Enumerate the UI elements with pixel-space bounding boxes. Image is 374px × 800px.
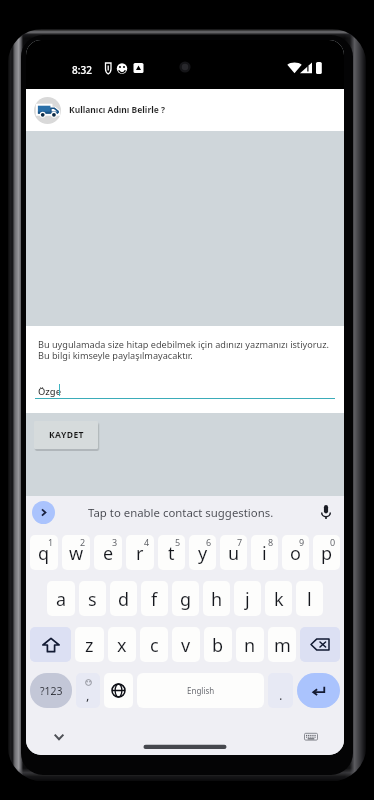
- button[interactable]: r: [126, 535, 154, 570]
- button[interactable]: h: [203, 581, 230, 616]
- staticText: l: [307, 587, 312, 612]
- staticText: p: [321, 541, 333, 566]
- staticText: ?123: [40, 684, 63, 698]
- staticText: y: [198, 541, 208, 566]
- staticText: r: [136, 541, 144, 566]
- button[interactable]: w: [62, 535, 90, 570]
- staticText: c: [150, 633, 159, 658]
- button[interactable]: v: [172, 627, 200, 662]
- staticText: 9: [299, 536, 305, 548]
- staticText: .: [279, 686, 283, 704]
- button[interactable]: a: [47, 581, 75, 616]
- staticText: h: [211, 587, 223, 612]
- staticText: x: [117, 633, 127, 658]
- staticText: i: [262, 541, 267, 566]
- staticText: 1: [48, 536, 54, 548]
- staticText: KAYDET: [49, 429, 84, 441]
- button[interactable]: i: [251, 535, 278, 570]
- staticText: 8:32: [72, 63, 92, 77]
- staticText: 8: [268, 536, 274, 548]
- button[interactable]: Change language: [104, 673, 133, 708]
- button[interactable]: ?123: [30, 673, 72, 708]
- button[interactable]: q: [30, 535, 58, 570]
- staticText: q: [38, 541, 50, 566]
- staticText: s: [88, 587, 97, 612]
- button[interactable]: z: [75, 627, 104, 662]
- staticText: a: [56, 587, 67, 612]
- button[interactable]: o: [282, 535, 309, 570]
- staticText: Bu uygulamada size hitap edebilmek için …: [38, 338, 329, 361]
- button[interactable]: d: [110, 581, 137, 616]
- staticText: v: [181, 633, 191, 658]
- button[interactable]: Expand suggestions: [32, 501, 55, 524]
- staticText: k: [274, 587, 284, 612]
- staticText: Özge: [38, 385, 62, 398]
- staticText: t: [168, 541, 175, 566]
- staticText: 7: [237, 536, 243, 548]
- staticText: w: [69, 541, 84, 566]
- button[interactable]: ,: [76, 673, 100, 708]
- staticText: d: [118, 587, 130, 612]
- staticText: 4: [144, 536, 150, 548]
- staticText: 0: [330, 536, 336, 548]
- staticText: m: [274, 633, 291, 658]
- staticText: e: [103, 541, 114, 566]
- staticText: f: [151, 587, 158, 612]
- button[interactable]: u: [220, 535, 247, 570]
- button[interactable]: English: [137, 673, 264, 708]
- button[interactable]: Backspace: [300, 627, 340, 662]
- staticText: ,: [86, 686, 90, 704]
- button[interactable]: Shift: [30, 627, 71, 662]
- staticText: 5: [175, 536, 181, 548]
- staticText: 3: [112, 536, 118, 548]
- staticText: Tap to enable contact suggestions.: [88, 505, 274, 521]
- staticText: Kullanıcı Adını Belirle ?: [69, 104, 166, 116]
- staticText: u: [228, 541, 240, 566]
- staticText: n: [244, 633, 256, 658]
- button[interactable]: l: [296, 581, 323, 616]
- staticText: 2: [80, 536, 86, 548]
- button[interactable]: c: [140, 627, 168, 662]
- button[interactable]: s: [79, 581, 106, 616]
- button[interactable]: Enter: [297, 673, 340, 708]
- staticText: g: [180, 587, 192, 612]
- staticText: z: [85, 633, 94, 658]
- button[interactable]: j: [234, 581, 261, 616]
- staticText: 6: [206, 536, 212, 548]
- button[interactable]: e: [94, 535, 122, 570]
- button[interactable]: KAYDET: [34, 421, 98, 449]
- other: Voice input: [318, 504, 334, 520]
- staticText: j: [245, 587, 250, 612]
- button[interactable]: p: [313, 535, 340, 570]
- button[interactable]: k: [265, 581, 292, 616]
- button[interactable]: g: [172, 581, 199, 616]
- staticText: English: [187, 685, 215, 696]
- button[interactable]: x: [108, 627, 136, 662]
- staticText: b: [212, 633, 224, 658]
- button[interactable]: m: [268, 627, 296, 662]
- button[interactable]: t: [158, 535, 185, 570]
- staticText: o: [290, 541, 301, 566]
- button[interactable]: y: [189, 535, 216, 570]
- button[interactable]: .: [268, 673, 293, 708]
- button[interactable]: f: [141, 581, 168, 616]
- button[interactable]: n: [236, 627, 264, 662]
- button[interactable]: b: [204, 627, 232, 662]
